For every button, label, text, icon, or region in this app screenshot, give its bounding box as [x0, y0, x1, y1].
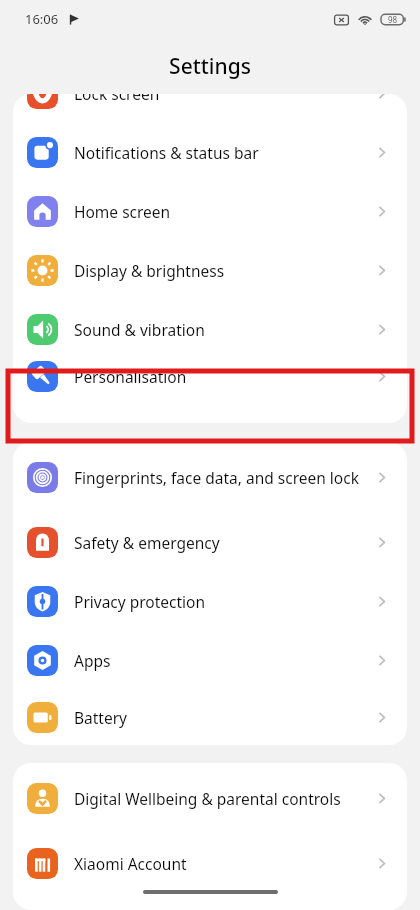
staticText: 98 — [388, 14, 398, 25]
staticText: Display & brightness — [74, 260, 365, 281]
staticText: 16:06 — [25, 10, 59, 28]
staticText: Battery — [74, 707, 365, 728]
button[interactable]: Apps — [13, 631, 407, 690]
button[interactable]: Notifications & status bar — [13, 123, 407, 182]
button[interactable]: Home screen — [13, 182, 407, 241]
staticText: Settings — [169, 52, 251, 81]
staticText: Sound & vibration — [74, 319, 365, 340]
button[interactable]: Privacy protection — [13, 572, 407, 631]
staticText: Lock screen — [74, 94, 365, 104]
staticText: Personalisation — [74, 366, 365, 387]
button[interactable]: Fingerprints, face data, and screen lock — [13, 442, 407, 513]
staticText: Apps — [74, 650, 365, 671]
staticText: Fingerprints, face data, and screen lock — [74, 467, 365, 488]
button[interactable]: Xiaomi Account — [13, 834, 407, 893]
staticText: Xiaomi Account — [74, 853, 365, 874]
button[interactable]: Digital Wellbeing & parental controls — [13, 763, 407, 834]
button[interactable]: Display & brightness — [13, 241, 407, 300]
staticText: Safety & emergency — [74, 532, 365, 553]
staticText: Digital Wellbeing & parental controls — [74, 788, 365, 809]
button[interactable]: Safety & emergency — [13, 513, 407, 572]
button[interactable]: Battery — [13, 690, 407, 745]
button[interactable]: Lock screen — [13, 94, 407, 123]
button[interactable]: Sound & vibration — [13, 300, 407, 359]
button[interactable]: Personalisation — [13, 359, 407, 393]
staticText: Home screen — [74, 201, 365, 222]
staticText: Privacy protection — [74, 591, 365, 612]
staticText: Notifications & status bar — [74, 142, 365, 163]
